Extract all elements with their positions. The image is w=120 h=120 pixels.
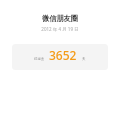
staticText: 天 [82, 57, 86, 61]
staticText: 2012 年 4 月 19 日 [41, 26, 79, 32]
button[interactable]: 微信朋友圈 [42, 14, 78, 23]
staticText: 3652 [49, 47, 77, 63]
staticText: 已过去 [34, 57, 45, 61]
button[interactable]: 已过去 [12, 44, 108, 70]
